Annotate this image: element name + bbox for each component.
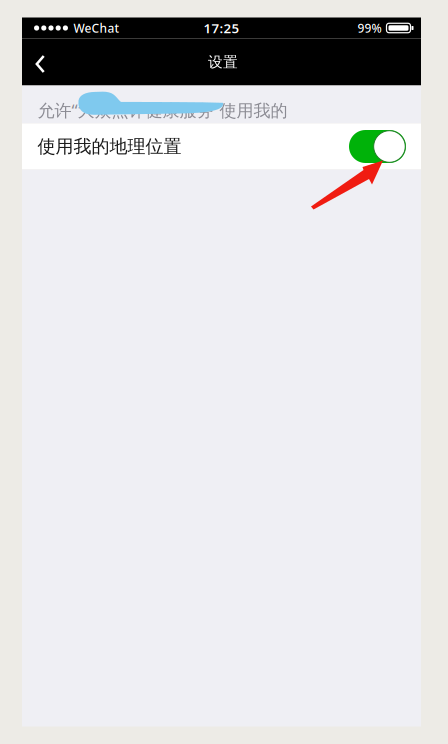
button[interactable]: Back: [22, 38, 66, 85]
staticText: 设置: [208, 53, 238, 71]
staticText: 99%: [357, 20, 381, 36]
button[interactable]: 使用我的地理位置: [22, 123, 421, 169]
staticText: 使用我的地理位置: [37, 135, 181, 158]
staticText: 17:25: [203, 19, 239, 37]
staticText: 允许“大众点评健康服务”使用我的: [37, 98, 287, 122]
staticText: WeChat: [73, 20, 119, 36]
